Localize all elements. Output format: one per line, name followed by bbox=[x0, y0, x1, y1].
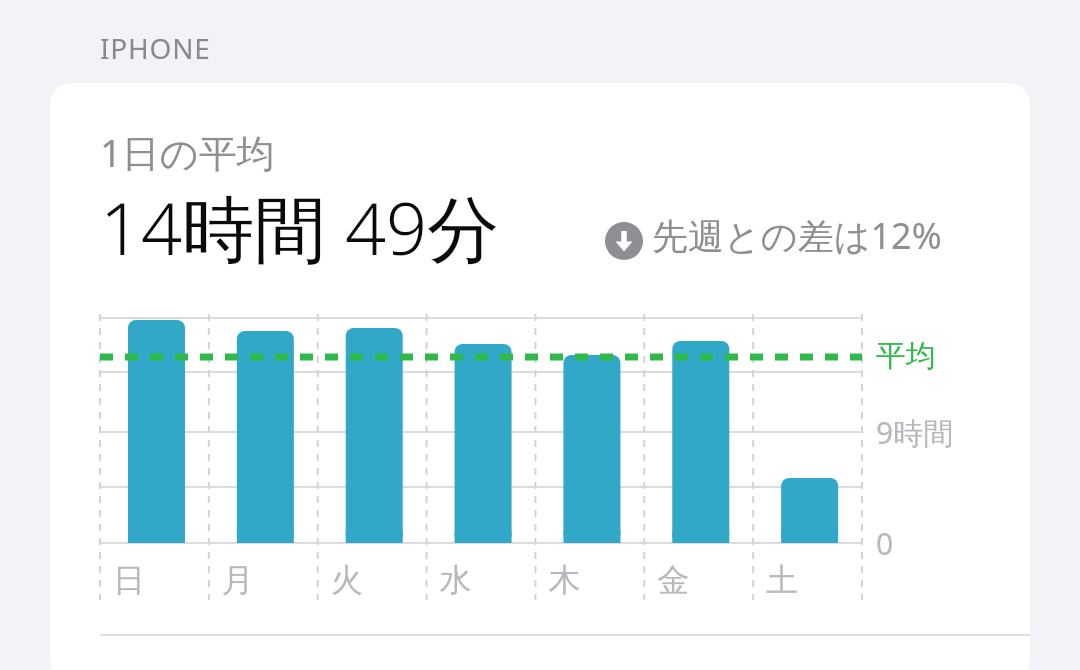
button[interactable]: Weekly screen time chart bbox=[100, 300, 1030, 600]
button[interactable] bbox=[50, 83, 1030, 670]
